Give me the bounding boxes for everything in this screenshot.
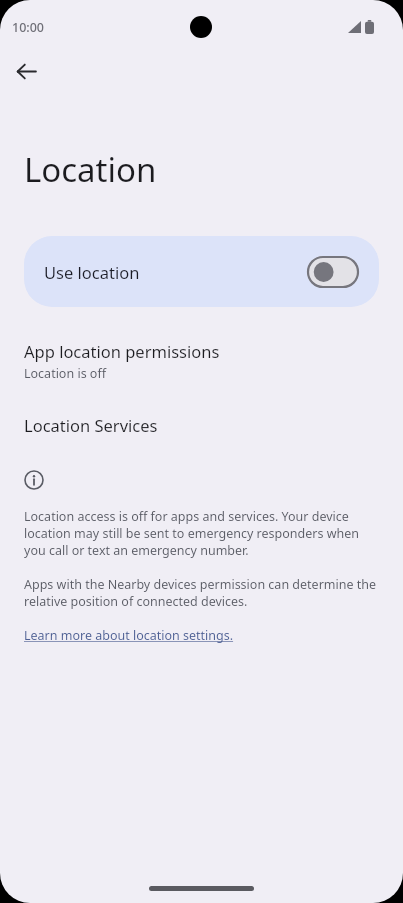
staticText: App location permissions xyxy=(24,340,220,362)
staticText: Use location xyxy=(44,261,140,283)
button[interactable]: Location Services xyxy=(0,414,403,436)
staticText: Learn more about location settings. xyxy=(24,627,234,644)
button[interactable]: Use location xyxy=(24,236,379,307)
button[interactable]: Back xyxy=(9,54,43,88)
staticText: Location xyxy=(24,147,157,192)
staticText: Location is off xyxy=(24,365,107,382)
staticText: Location access is off for apps and serv… xyxy=(24,508,379,559)
staticText: Location Services xyxy=(24,414,158,436)
staticText: 10:00 xyxy=(12,19,45,36)
button[interactable]: App location permissions xyxy=(0,340,403,382)
staticText: Apps with the Nearby devices permission … xyxy=(24,576,379,610)
other: Use location toggle, off xyxy=(307,256,359,288)
button[interactable]: Learn more about location settings. xyxy=(24,627,234,644)
